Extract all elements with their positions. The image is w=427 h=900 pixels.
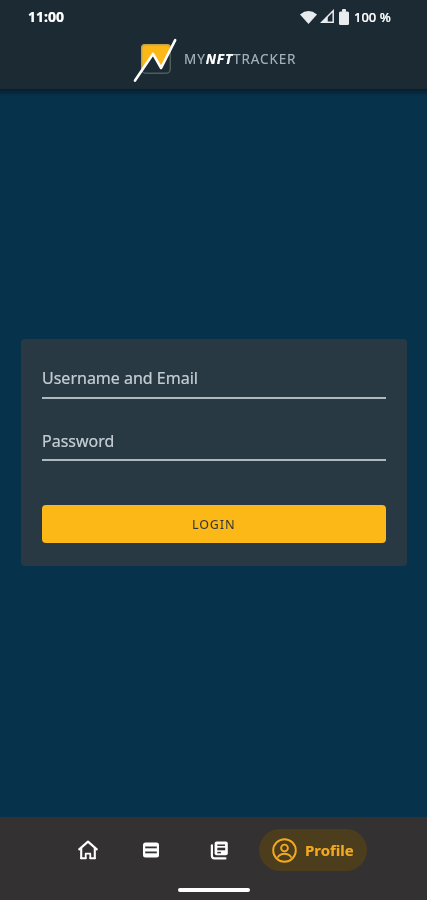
staticText: MYNFTTRACKER [184,50,297,68]
button[interactable] [139,838,163,862]
button[interactable]: Username and Email [42,367,386,389]
button[interactable]: Profile [259,829,367,871]
staticText: Username and Email [42,367,198,389]
button[interactable] [76,838,100,862]
button[interactable]: LOGIN [42,505,386,543]
staticText: Password [42,430,115,452]
button[interactable]: Password [42,430,386,452]
staticText: LOGIN [192,516,236,533]
staticText: Profile [305,840,354,860]
button[interactable] [207,838,231,862]
staticText: 100 % [354,8,391,26]
staticText: 11:00 [28,7,64,26]
